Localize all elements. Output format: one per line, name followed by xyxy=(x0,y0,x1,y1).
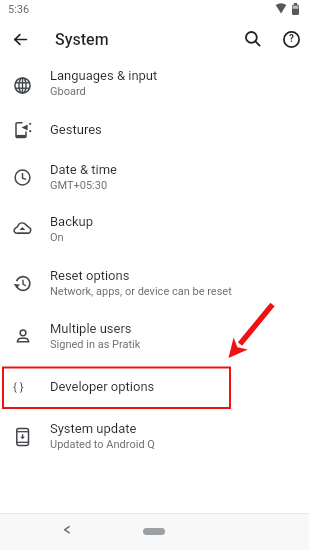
staticText: Backup xyxy=(50,214,94,229)
button[interactable] xyxy=(143,528,165,535)
staticText: Developer options xyxy=(50,379,155,394)
staticText: Multiple users xyxy=(50,321,132,336)
staticText: On xyxy=(50,231,64,244)
button[interactable]: Multiple users xyxy=(0,311,309,361)
button[interactable]: Gestures xyxy=(0,107,309,152)
button[interactable]: Date & time xyxy=(0,152,309,202)
staticText: System xyxy=(55,30,109,49)
button[interactable]: { } xyxy=(0,361,309,411)
button[interactable]: System update xyxy=(0,411,309,461)
staticText: GMT+05:30 xyxy=(50,179,108,192)
button[interactable]: ? xyxy=(276,24,306,54)
staticText: Reset options xyxy=(50,268,130,283)
staticText: Signed in as Pratik xyxy=(50,338,141,351)
staticText: Date & time xyxy=(50,162,117,177)
button[interactable]: Backup xyxy=(0,202,309,255)
staticText: Languages & input xyxy=(50,68,158,83)
button[interactable] xyxy=(238,24,268,54)
button[interactable] xyxy=(52,515,82,545)
button[interactable]: Languages & input xyxy=(0,58,309,107)
staticText: Updated to Android Q xyxy=(50,438,155,451)
staticText: { } xyxy=(13,380,24,393)
staticText: Gboard xyxy=(50,85,86,98)
staticText: System update xyxy=(50,421,137,436)
staticText: 5:36 xyxy=(8,3,30,16)
staticText: Gestures xyxy=(50,122,102,137)
staticText: ? xyxy=(289,33,294,45)
staticText: Network, apps, or device can be reset xyxy=(50,285,232,298)
button[interactable]: Reset options xyxy=(0,255,309,311)
button[interactable] xyxy=(0,20,40,58)
